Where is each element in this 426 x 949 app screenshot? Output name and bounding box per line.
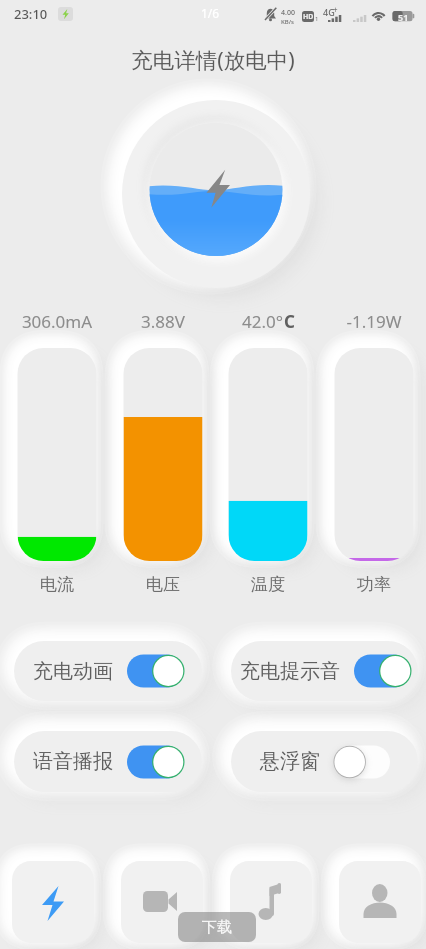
button[interactable]: 语音播报 — [14, 731, 202, 792]
staticText: 1/6 — [201, 5, 220, 21]
staticText: C — [284, 310, 295, 333]
staticText: 电压 — [110, 574, 216, 595]
staticText: 悬浮窗 — [260, 749, 320, 774]
staticText: KB/s — [281, 18, 294, 26]
staticText: 23:10 — [14, 5, 48, 23]
staticText: 温度 — [215, 574, 321, 595]
staticText: 电流 — [4, 574, 110, 595]
staticText: 充电动画 — [33, 659, 113, 684]
button[interactable]: 充电动画 — [14, 641, 202, 701]
staticText: 42.0° — [242, 310, 284, 333]
staticText: 充电提示音 — [240, 659, 340, 684]
staticText: 306.0mA — [4, 310, 110, 333]
staticText: 4.00 — [281, 8, 295, 18]
staticText: 3.88V — [110, 310, 216, 333]
staticText: HD — [303, 12, 314, 22]
button[interactable]: Music — [230, 861, 312, 943]
button[interactable]: Charge — [12, 861, 94, 943]
staticText: -1.19W — [321, 310, 426, 333]
button[interactable]: 充电提示音 — [231, 641, 418, 701]
staticText: + — [333, 4, 338, 15]
button[interactable]: 悬浮窗 — [231, 731, 418, 792]
staticText: 语音播报 — [33, 749, 113, 774]
staticText: 充电详情(放电中) — [0, 45, 426, 74]
staticText: 51 — [398, 11, 409, 23]
staticText: 4G — [323, 6, 335, 18]
staticText: 下载 — [202, 918, 232, 937]
button[interactable]: Video — [121, 861, 203, 943]
button[interactable]: Contacts — [339, 861, 421, 943]
staticText: 1 — [315, 15, 319, 23]
staticText: 功率 — [321, 574, 426, 595]
